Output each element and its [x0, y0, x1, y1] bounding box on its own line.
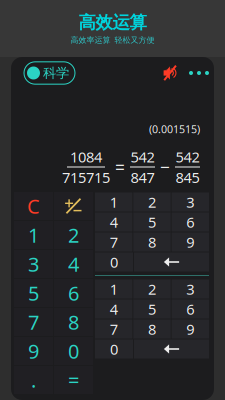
button[interactable]: 4 — [95, 212, 132, 231]
button[interactable]: 3 — [172, 192, 209, 211]
button[interactable]: More options — [188, 65, 210, 81]
staticText: 4 — [110, 299, 118, 319]
button[interactable]: 2 — [54, 221, 93, 249]
button[interactable]: 5 — [133, 212, 171, 231]
staticText: 1 — [110, 192, 118, 212]
staticText: 0 — [110, 339, 118, 359]
staticText: 5 — [148, 212, 156, 232]
button[interactable]: 科学 — [24, 62, 75, 84]
staticText: 2 — [148, 192, 156, 212]
staticText: 542 — [175, 147, 199, 166]
staticText: 高效率运算 轻松又方便 — [70, 35, 154, 45]
button[interactable]: 5 — [133, 299, 171, 318]
staticText: = — [115, 155, 125, 178]
button[interactable]: 1 — [95, 279, 132, 298]
button[interactable]: 1 — [14, 221, 53, 249]
button[interactable]: C — [14, 192, 53, 220]
staticText: 845 — [175, 167, 199, 187]
staticText: 847 — [130, 167, 154, 187]
staticText: (0.001515) — [149, 122, 200, 136]
staticText: = — [68, 367, 79, 393]
staticText: 1084 — [70, 147, 102, 166]
button[interactable]: = — [54, 366, 93, 394]
button[interactable]: 4 — [95, 299, 132, 318]
staticText: 0 — [68, 338, 79, 364]
staticText: 4 — [68, 251, 79, 277]
staticText: 8 — [68, 309, 79, 335]
staticText: 3 — [28, 251, 39, 277]
staticText: 7 — [110, 319, 118, 339]
button[interactable]: 2 — [133, 192, 171, 211]
button[interactable]: 7 — [14, 308, 53, 336]
button[interactable]: Backspace — [134, 339, 209, 358]
staticText: 7 — [28, 309, 39, 335]
staticText: 5 — [148, 299, 156, 319]
staticText: 3 — [186, 192, 194, 212]
button[interactable]: 2 — [133, 279, 171, 298]
button[interactable]: 3 — [172, 279, 209, 298]
staticText: 542 — [130, 147, 154, 166]
button[interactable]: 7 — [95, 232, 132, 251]
button[interactable]: Mute — [163, 65, 177, 81]
staticText: 1 — [28, 222, 39, 248]
button[interactable]: 7 — [95, 319, 132, 338]
button[interactable]: 9 — [14, 337, 53, 365]
staticText: 5 — [28, 280, 39, 306]
button[interactable]: Backspace — [134, 252, 209, 271]
staticText: 9 — [28, 338, 39, 364]
button[interactable]: 8 — [133, 319, 171, 338]
staticText: 7 — [110, 232, 118, 252]
button[interactable]: 0 — [54, 337, 93, 365]
button[interactable]: 3 — [14, 250, 53, 278]
staticText: 6 — [68, 280, 79, 306]
button[interactable]: 1 — [95, 192, 132, 211]
button[interactable]: Plus minus — [54, 192, 93, 220]
button[interactable]: 0 — [95, 339, 133, 358]
staticText: 9 — [186, 319, 194, 339]
button[interactable]: . — [14, 366, 53, 394]
staticText: 0 — [110, 252, 118, 272]
button[interactable]: 6 — [54, 279, 93, 307]
staticText: C — [27, 193, 40, 219]
staticText: 4 — [110, 212, 118, 232]
staticText: 6 — [186, 212, 194, 232]
button[interactable]: 6 — [172, 212, 209, 231]
staticText: . — [31, 367, 36, 393]
staticText: 6 — [186, 299, 194, 319]
staticText: 2 — [148, 279, 156, 299]
staticText: 9 — [186, 232, 194, 252]
button[interactable]: 9 — [172, 232, 209, 251]
staticText: 8 — [148, 319, 156, 339]
staticText: 科学 — [43, 65, 69, 81]
button[interactable]: 4 — [54, 250, 93, 278]
button[interactable]: 6 — [172, 299, 209, 318]
staticText: − — [160, 155, 170, 178]
button[interactable]: 5 — [14, 279, 53, 307]
staticText: 3 — [186, 279, 194, 299]
staticText: 2 — [68, 222, 79, 248]
staticText: 8 — [148, 232, 156, 252]
button[interactable]: 8 — [133, 232, 171, 251]
staticText: 715715 — [62, 167, 110, 187]
staticText: 1 — [110, 279, 118, 299]
button[interactable]: 9 — [172, 319, 209, 338]
button[interactable]: 0 — [95, 252, 133, 271]
button[interactable]: 8 — [54, 308, 93, 336]
staticText: 高效运算 — [78, 12, 146, 33]
